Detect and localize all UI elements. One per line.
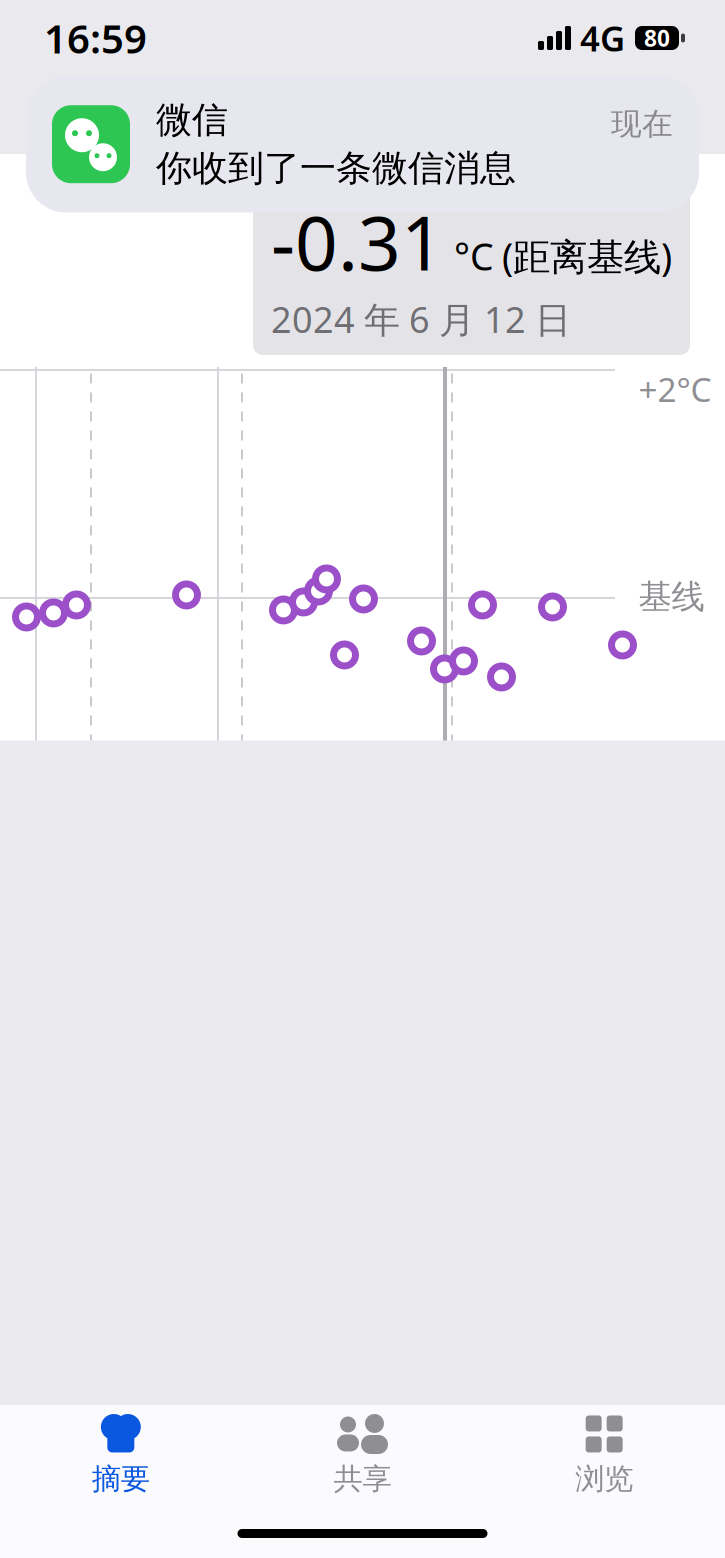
staticText: 现在 — [611, 105, 673, 143]
staticText: 4G — [580, 15, 625, 61]
staticText: +2°C — [638, 367, 711, 411]
staticText: 你收到了一条微信消息 — [156, 146, 516, 190]
staticText: °C — [454, 231, 494, 281]
staticText: 周 — [126, 95, 163, 141]
staticText: 80 — [644, 23, 670, 53]
staticText: 摘要 — [92, 1461, 150, 1497]
staticText: 微信 — [156, 98, 228, 142]
button[interactable]: 周 — [36, 90, 254, 146]
staticText: 2024 年 6 月 12 日 — [271, 295, 571, 343]
button[interactable]: 微信 — [26, 76, 699, 212]
staticText: 基线 — [638, 576, 704, 617]
button[interactable]: 6个月 — [471, 90, 689, 146]
staticText: (距离基线) — [502, 231, 672, 281]
button[interactable]: 共享 — [242, 1405, 483, 1505]
staticText: 16:59 — [44, 11, 147, 64]
staticText: 你的体温会自然波动，并由于饮食、锻炼和酒精摄入等变量，或由于月经周期和疾病等生理… — [64, 1465, 649, 1558]
staticText: -0.31 — [271, 192, 444, 291]
staticText: 手腕温度由 Apple Watch 在你睡眠期间记录，属于和体温相关的测量。所显… — [64, 1055, 649, 1439]
button[interactable]: 摘要 — [0, 1405, 242, 1505]
staticText: 6个月 — [533, 93, 628, 143]
staticText: 浏览 — [575, 1461, 633, 1497]
button[interactable]: 浏览 — [483, 1405, 725, 1505]
staticText: 共享 — [333, 1461, 391, 1497]
